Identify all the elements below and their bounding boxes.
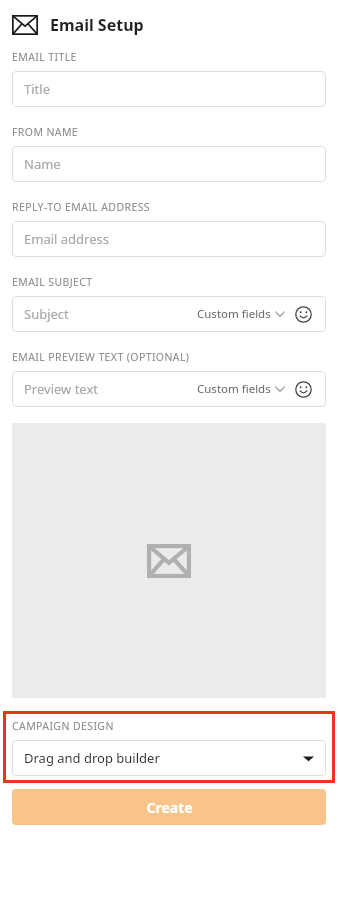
staticText: Drag and drop builder	[24, 749, 160, 767]
staticText: Subject	[24, 305, 69, 323]
staticText: EMAIL TITLE	[12, 50, 77, 64]
staticText: CAMPAIGN DESIGN	[12, 719, 114, 733]
staticText: REPLY-TO EMAIL ADDRESS	[12, 200, 150, 214]
button[interactable]: Email preview placeholder	[12, 423, 326, 698]
button[interactable]: Preview text	[12, 371, 326, 407]
staticText: Title	[24, 80, 50, 98]
staticText: Name	[24, 155, 61, 173]
button[interactable]: Name	[12, 146, 326, 182]
staticText: Email Setup	[50, 14, 144, 36]
staticText: FROM NAME	[12, 125, 79, 139]
staticText: EMAIL PREVIEW TEXT (OPTIONAL)	[12, 350, 190, 364]
button[interactable]: Email address	[12, 221, 326, 257]
staticText: Custom fields	[197, 306, 271, 322]
button[interactable]: Custom fields	[197, 381, 286, 397]
button[interactable]: Create	[12, 789, 326, 825]
staticText: Custom fields	[197, 381, 271, 397]
staticText: Create	[146, 798, 193, 817]
button[interactable]: Drag and drop builder	[12, 740, 326, 776]
button[interactable]: Custom fields	[197, 306, 286, 322]
staticText: EMAIL SUBJECT	[12, 275, 93, 289]
button[interactable]: Subject	[12, 296, 326, 332]
staticText: Preview text	[24, 380, 99, 398]
staticText: Email address	[24, 230, 109, 248]
button[interactable]: Insert emoji	[292, 303, 314, 325]
button[interactable]: Title	[12, 71, 326, 107]
button[interactable]: Insert emoji	[292, 378, 314, 400]
